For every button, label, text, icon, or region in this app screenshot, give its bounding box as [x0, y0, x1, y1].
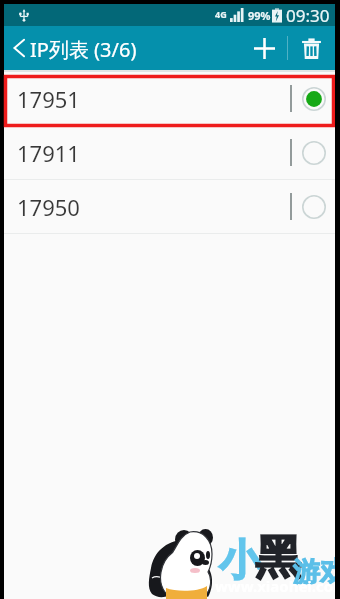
- staticText: 17951: [17, 84, 80, 114]
- staticText: 99%: [248, 8, 271, 23]
- button[interactable]: 17951: [4, 72, 335, 125]
- staticText: 小: [219, 535, 261, 588]
- button[interactable]: Delete: [288, 26, 335, 70]
- button[interactable]: Back: [4, 26, 145, 70]
- button[interactable]: 17911: [4, 126, 335, 179]
- other: Back: [13, 39, 25, 57]
- staticText: 黑: [255, 529, 301, 587]
- staticText: IP列表 (3/6): [30, 36, 137, 63]
- button[interactable]: 17950: [4, 180, 335, 233]
- staticText: 17911: [17, 138, 80, 168]
- staticText: www.xiaohei.com: [215, 576, 340, 596]
- staticText: 17950: [17, 192, 80, 222]
- staticText: 4G: [215, 8, 227, 20]
- staticText: 游戏: [293, 555, 340, 589]
- staticText: 09:30: [286, 4, 330, 26]
- button[interactable]: Add: [241, 26, 287, 70]
